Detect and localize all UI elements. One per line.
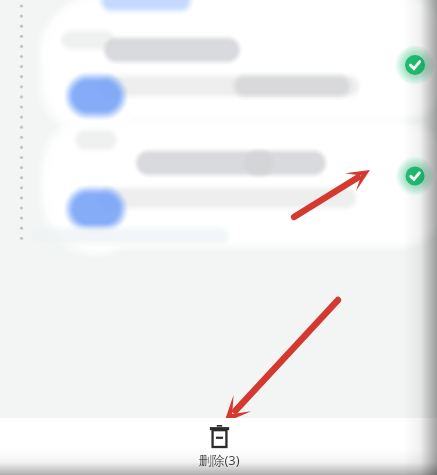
button[interactable]: 删除(3) <box>0 418 437 475</box>
staticText: 删除(3) <box>198 451 240 469</box>
